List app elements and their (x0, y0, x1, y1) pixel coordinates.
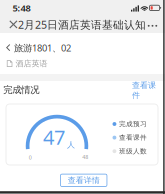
button[interactable]: More options (142, 16, 162, 36)
staticText: 酒店英语 (16, 59, 48, 68)
button[interactable]: 查看课件 (126, 84, 156, 96)
staticText: 查看详情 (68, 175, 100, 185)
staticText: 5:48 (12, 2, 30, 14)
staticText: 完成预习 (119, 120, 147, 128)
button[interactable]: Close (0, 14, 26, 34)
staticText: 0 (29, 154, 32, 161)
staticText: 查看课件 (119, 133, 147, 142)
staticText: 旅游1801、02 (14, 42, 71, 54)
button[interactable]: 旅游1801、02 (0, 40, 165, 56)
staticText: 查看课件 (132, 80, 156, 100)
button[interactable]: 查看详情 (60, 174, 107, 186)
staticText: 完成情况 (3, 84, 39, 96)
staticText: 47 (43, 124, 65, 150)
staticText: 班级人数 (119, 147, 147, 155)
staticText: 2月25日酒店英语基础认知 (18, 17, 146, 32)
staticText: 人 (67, 140, 75, 150)
staticText: 48 (82, 153, 88, 161)
